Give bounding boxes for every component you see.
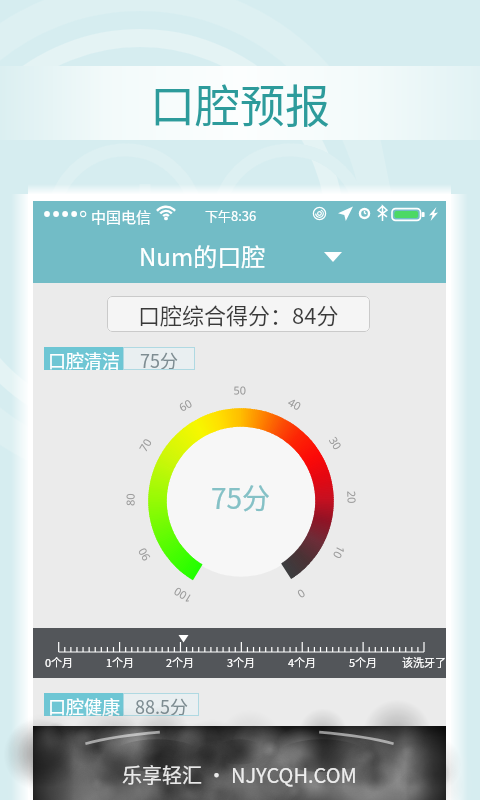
staticText: Num的口腔 bbox=[139, 238, 266, 273]
staticText: 口腔预报 bbox=[150, 71, 331, 136]
staticText: 2个月 bbox=[166, 654, 195, 670]
staticText: 乐享轻汇 · NJYCQH.COM bbox=[122, 760, 357, 789]
staticText: 1个月 bbox=[106, 654, 135, 670]
button[interactable]: 口腔综合得分：84分 bbox=[107, 296, 370, 332]
button[interactable]: 口腔清洁 bbox=[44, 347, 195, 370]
staticText: 下午8:36 bbox=[205, 206, 257, 225]
staticText: 口腔综合得分：84分 bbox=[138, 298, 339, 330]
staticText: 中国电信 bbox=[91, 206, 152, 228]
staticText: 口腔清洁 bbox=[48, 347, 120, 370]
staticText: 该洗牙了 bbox=[402, 654, 446, 670]
staticText: 0个月 bbox=[45, 654, 74, 670]
staticText: 88.5分 bbox=[135, 693, 188, 716]
staticText: 75分 bbox=[140, 347, 178, 370]
staticText: 3个月 bbox=[227, 654, 256, 670]
staticText: 口腔健康 bbox=[48, 693, 120, 716]
staticText: 4个月 bbox=[288, 654, 317, 670]
other: Select profile bbox=[324, 252, 342, 262]
staticText: 5个月 bbox=[349, 654, 378, 670]
staticText: 75分 bbox=[211, 477, 271, 518]
button[interactable]: Num的口腔 bbox=[33, 228, 446, 283]
button[interactable]: 口腔健康 bbox=[44, 693, 199, 716]
